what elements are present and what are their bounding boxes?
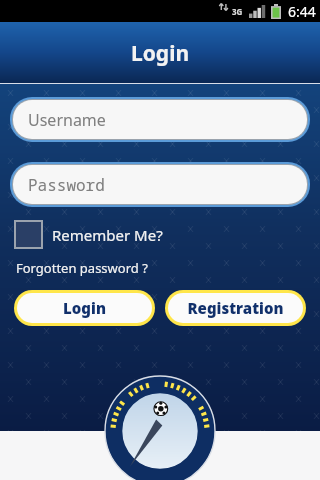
staticText: Remember Me? xyxy=(52,225,163,245)
button[interactable]: Password xyxy=(13,165,307,204)
staticText: 6:44 xyxy=(288,2,316,21)
button[interactable]: Login xyxy=(17,293,152,323)
staticText: Login xyxy=(63,298,106,318)
staticText: Forgotten password ? xyxy=(16,259,148,277)
staticText: Login xyxy=(131,39,190,68)
button[interactable]: Forgotten password ? xyxy=(14,257,150,279)
staticText: 3G xyxy=(232,6,243,17)
staticText: Password xyxy=(28,174,105,196)
staticText: Username xyxy=(28,109,106,131)
button[interactable]: Registration xyxy=(168,293,303,323)
staticText: Registration xyxy=(187,298,284,318)
button[interactable]: Remember Me? xyxy=(14,220,163,249)
button[interactable]: Username xyxy=(13,100,307,139)
